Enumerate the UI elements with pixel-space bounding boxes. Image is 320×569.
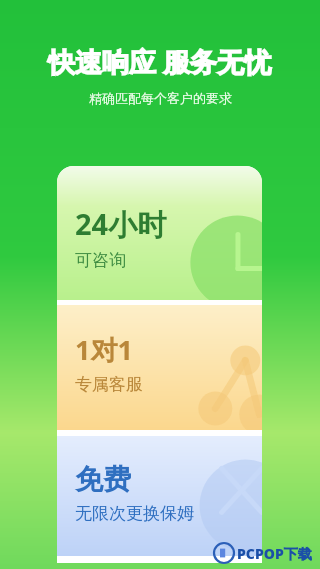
staticText: 快速响应 服务无忧 xyxy=(48,43,272,80)
staticText: 无限次更换保姆 xyxy=(75,503,194,524)
staticText: 1对1 xyxy=(75,331,133,368)
staticText: 免费 xyxy=(75,462,131,497)
staticText: 专属客服 xyxy=(75,374,143,395)
staticText: 可咨询 xyxy=(75,250,126,271)
button[interactable]: 1对1 xyxy=(57,305,262,430)
other: PCPOP 下载 xyxy=(214,543,312,563)
staticText: 24小时 xyxy=(75,204,167,244)
button[interactable]: 24小时 xyxy=(57,166,262,300)
staticText: 精确匹配每个客户的要求 xyxy=(89,90,232,106)
button[interactable]: 免费 xyxy=(57,436,262,556)
staticText: PCPOP下载 xyxy=(237,544,312,563)
